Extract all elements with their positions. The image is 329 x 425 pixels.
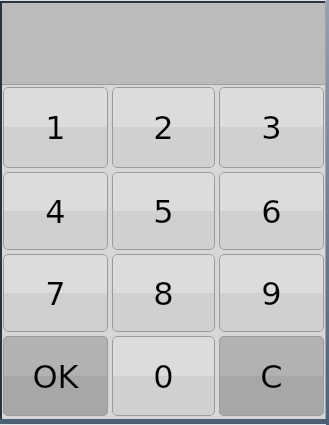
button[interactable]: 0	[112, 336, 215, 416]
staticText: 7	[45, 275, 66, 312]
staticText: 3	[261, 109, 282, 146]
button[interactable]: 7	[3, 254, 108, 332]
button[interactable]: 1	[3, 87, 108, 168]
button[interactable]: OK	[3, 336, 108, 416]
button[interactable]: 9	[219, 254, 324, 332]
staticText: 6	[261, 193, 282, 230]
staticText: C	[260, 358, 283, 395]
staticText: 5	[153, 193, 174, 230]
staticText: 4	[45, 193, 66, 230]
staticText: 9	[261, 275, 282, 312]
button[interactable]: C	[219, 336, 324, 416]
button[interactable]: 3	[219, 87, 324, 168]
staticText: 0	[153, 358, 174, 395]
button[interactable]: 2	[112, 87, 215, 168]
staticText: 8	[153, 275, 174, 312]
button[interactable]: 5	[112, 172, 215, 250]
button[interactable]: 8	[112, 254, 215, 332]
button[interactable]: 6	[219, 172, 324, 250]
staticText: 1	[45, 109, 66, 146]
button[interactable]: 4	[3, 172, 108, 250]
staticText: OK	[32, 358, 79, 395]
staticText: 2	[153, 109, 174, 146]
